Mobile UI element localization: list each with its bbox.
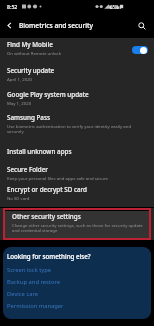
staticText: Samsung Pass [7, 113, 51, 122]
staticText: Screen lock type [7, 266, 52, 274]
staticText: Other security settings [12, 212, 81, 221]
button[interactable]: Search [132, 16, 151, 35]
button[interactable]: Samsung Pass [0, 111, 154, 144]
staticText: Google Play system update [7, 90, 89, 99]
button[interactable]: Screen lock type [7, 266, 146, 278]
staticText: No SD card [7, 195, 30, 201]
staticText: Install unknown apps [7, 147, 72, 156]
button[interactable]: Back [0, 16, 19, 35]
button[interactable]: Backup and restore [7, 278, 146, 290]
staticText: On without Remote unlock [7, 50, 61, 56]
staticText: April 1, 2020 [7, 76, 33, 82]
button[interactable]: Find My Mobile [0, 38, 154, 64]
button[interactable]: Other security settings [5, 211, 149, 238]
button[interactable]: Device care [7, 290, 146, 302]
staticText: Use biometric authentication to verify y… [7, 123, 148, 135]
staticText: Keep your personal files and apps safe a… [7, 175, 109, 181]
staticText: Security update [7, 66, 55, 75]
button[interactable]: Encrypt or decrypt SD card [0, 183, 154, 207]
staticText: Backup and restore [7, 278, 60, 286]
staticText: Encrypt or decrypt SD card [7, 185, 88, 194]
staticText: Looking for something else? [7, 252, 91, 260]
button[interactable]: Install unknown apps [0, 144, 154, 163]
button[interactable]: Secure Folder [0, 163, 154, 183]
staticText: 65% [110, 4, 119, 10]
staticText: Change other security settings, such as … [12, 222, 143, 234]
staticText: 8:52 [7, 3, 18, 10]
button[interactable]: Google Play system update [0, 88, 154, 111]
staticText: Biometrics and security [19, 21, 94, 30]
button[interactable]: Permission manager [7, 302, 146, 314]
staticText: Device care [7, 290, 38, 298]
button[interactable]: Security update [0, 64, 154, 88]
staticText: Secure Folder [7, 165, 48, 174]
staticText: Find My Mobile [7, 40, 53, 49]
staticText: Permission manager [7, 302, 64, 310]
staticText: May 1, 2020 [7, 100, 32, 106]
